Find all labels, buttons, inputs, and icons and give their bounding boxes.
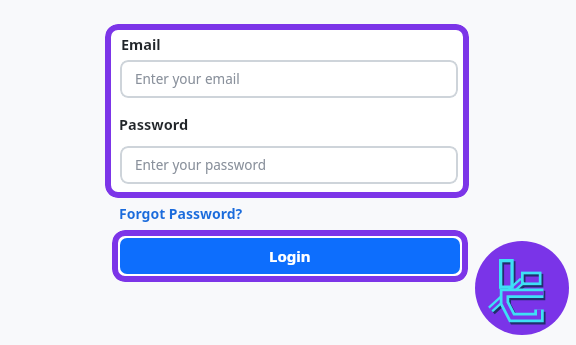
staticText: Enter your password <box>135 156 267 174</box>
staticText: Password <box>119 114 189 134</box>
button[interactable]: Enter your password <box>120 146 458 184</box>
staticText: Login <box>269 246 311 266</box>
button[interactable] <box>475 241 569 335</box>
staticText: Enter your email <box>135 70 240 88</box>
button[interactable]: Forgot Password? <box>119 204 243 223</box>
button[interactable]: Enter your email <box>120 60 458 98</box>
button[interactable]: Login <box>120 238 460 274</box>
staticText: Email <box>121 34 161 54</box>
